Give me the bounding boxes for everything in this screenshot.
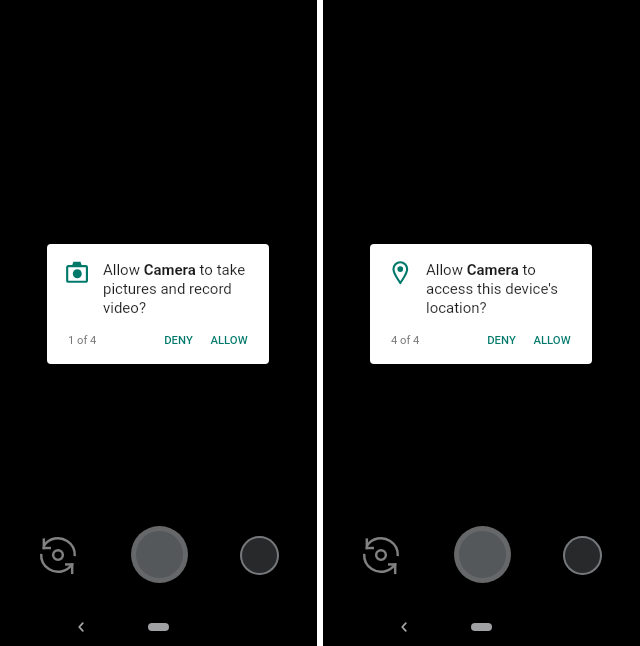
button[interactable]: Home [471,623,492,631]
staticText: DENY [487,334,516,347]
button[interactable]: Photo gallery [563,536,602,575]
button[interactable]: Back [390,613,418,641]
staticText: DENY [164,334,193,347]
button[interactable]: Switch camera [38,535,78,575]
button[interactable]: Photo gallery [240,536,279,575]
button[interactable]: Home [148,623,169,631]
button[interactable]: Take photo [454,526,511,583]
staticText: ALLOW [210,334,248,347]
staticText: ALLOW [533,334,571,347]
staticText: 1 of 4 [68,334,97,347]
button[interactable]: Take photo [131,526,188,583]
staticText: Allow Camera to take pictures and record… [103,261,263,316]
button[interactable]: DENY [476,328,526,353]
button[interactable]: DENY [153,328,203,353]
button[interactable]: ALLOW [203,328,254,353]
button[interactable]: ALLOW [526,328,577,353]
button[interactable]: Back [67,613,95,641]
staticText: Allow Camera to access this device's loc… [426,261,586,316]
staticText: 4 of 4 [391,334,420,347]
button[interactable]: Switch camera [361,535,401,575]
